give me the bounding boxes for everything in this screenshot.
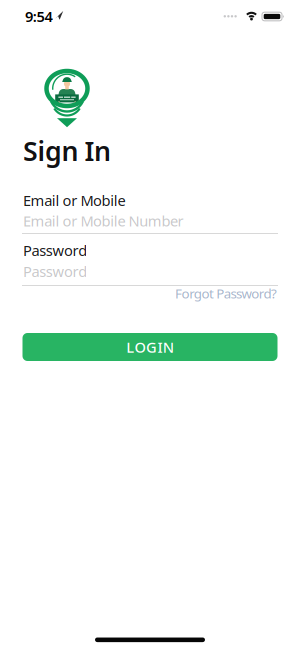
staticText: Email or Mobile (23, 190, 125, 210)
button[interactable]: Password (22, 261, 278, 286)
staticText: Email or Mobile Number (23, 211, 184, 230)
button[interactable]: LOGIN (22, 333, 277, 361)
staticText: 9:54 (25, 6, 52, 26)
staticText: Password (23, 240, 87, 260)
staticText: Password (23, 261, 87, 281)
button[interactable]: Email or Mobile Number (22, 210, 278, 234)
staticText: LOGIN (126, 337, 174, 357)
staticText: Sign In (23, 133, 111, 168)
button[interactable]: Forgot Password? (175, 284, 277, 302)
staticText: Forgot Password? (175, 284, 277, 302)
